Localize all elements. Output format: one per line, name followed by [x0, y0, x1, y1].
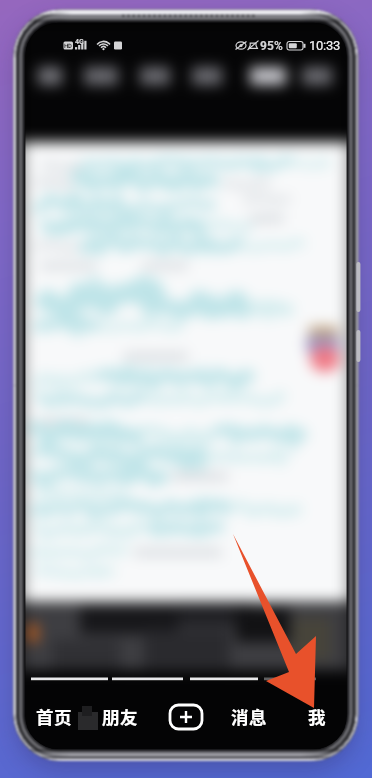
button[interactable]: 发布 [164, 694, 208, 744]
button[interactable]: 消息 [218, 694, 288, 744]
button[interactable]: 首页 [24, 694, 96, 744]
button[interactable]: 我 [292, 694, 346, 744]
button[interactable]: 朋友 [96, 694, 164, 744]
